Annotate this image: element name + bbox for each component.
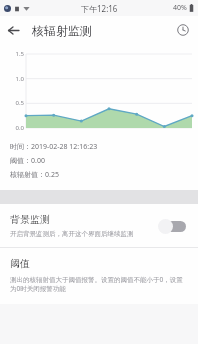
staticText: 下午12:16 [81, 3, 118, 14]
staticText: 测出的核辐射值大于阈值报警。设置的阈值不能小于0，设置为0时关闭报警功能 [10, 275, 188, 293]
button[interactable]: History [172, 19, 194, 41]
staticText: 1.0 [0, 75, 24, 83]
button[interactable]: 阈值 [0, 248, 198, 304]
staticText: 40% [173, 3, 187, 13]
staticText: 0.0 [0, 124, 24, 132]
staticText: 阈值：0.00 [10, 156, 45, 166]
staticText: 1.5 [0, 50, 24, 58]
staticText: 时间：2019-02-28 12:16:23 [10, 142, 98, 152]
staticText: 0.5 [0, 99, 24, 107]
staticText: 背景监测 [10, 213, 50, 226]
button[interactable]: 背景监测 [0, 204, 198, 247]
staticText: 开启背景监测后，离开这个界面后继续监测 [10, 230, 134, 238]
staticText: 核辐射值：0.25 [10, 170, 59, 180]
staticText: 阈值 [10, 257, 30, 270]
button[interactable]: Toggle background monitoring [158, 218, 188, 234]
button[interactable]: Back [0, 17, 26, 43]
staticText: 核辐射监测 [32, 23, 92, 38]
